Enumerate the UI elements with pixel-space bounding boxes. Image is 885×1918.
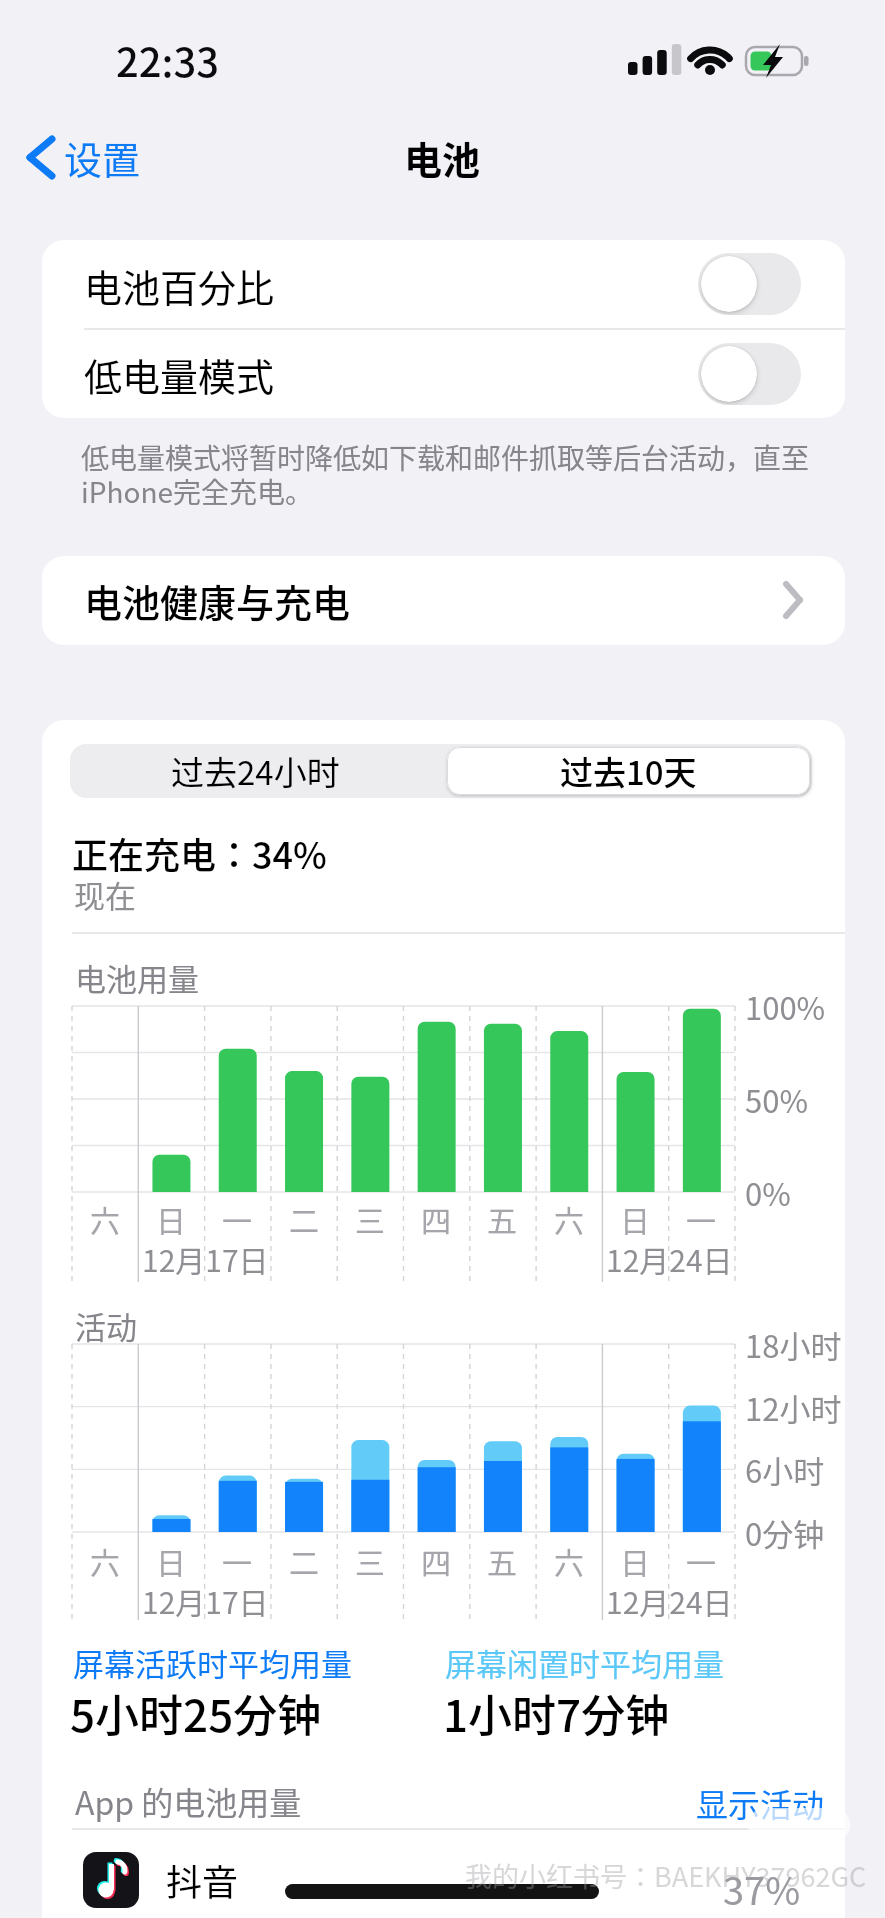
staticText: 六 xyxy=(90,1539,120,1582)
staticText: 五 xyxy=(487,1197,517,1240)
staticText: 18小时 xyxy=(745,1322,842,1367)
staticText: 低电量模式 xyxy=(84,347,275,402)
button[interactable] xyxy=(20,130,150,186)
staticText: 三 xyxy=(355,1539,385,1582)
staticText: 12月17日 xyxy=(142,1579,269,1622)
staticText: 现在 xyxy=(74,872,136,917)
staticText: 过去24小时 xyxy=(171,747,340,795)
button[interactable] xyxy=(698,343,801,405)
staticText: 屏幕活跃时平均用量 xyxy=(73,1640,352,1685)
staticText: 一 xyxy=(222,1539,252,1582)
staticText: 六 xyxy=(554,1197,584,1240)
staticText: 显示活动 xyxy=(696,1780,825,1826)
button[interactable] xyxy=(42,556,845,645)
staticText: 12小时 xyxy=(745,1385,842,1430)
staticText: 1小时7分钟 xyxy=(443,1681,670,1745)
staticText: 日 xyxy=(156,1539,186,1582)
staticText: 日 xyxy=(156,1197,186,1240)
button[interactable] xyxy=(698,253,801,315)
staticText: 五 xyxy=(487,1539,517,1582)
staticText: 电池 xyxy=(404,130,481,185)
staticText: 日 xyxy=(620,1539,650,1582)
staticText: 二 xyxy=(289,1539,319,1582)
staticText: 六 xyxy=(90,1197,120,1240)
staticText: 12月24日 xyxy=(606,1237,733,1280)
staticText: 四 xyxy=(421,1197,451,1240)
staticText: 50% xyxy=(745,1077,808,1122)
staticText: 活动 xyxy=(75,1303,137,1348)
staticText: 三 xyxy=(355,1197,385,1240)
staticText: 二 xyxy=(289,1197,319,1240)
staticText: 低电量模式将暂时降低如下载和邮件抓取等后台活动，直至 iPhone完全充电。 xyxy=(81,437,810,511)
button[interactable] xyxy=(447,747,810,795)
staticText: 电池百分比 xyxy=(84,258,275,313)
staticText: 22:33 xyxy=(116,31,220,89)
staticText: 5小时25分钟 xyxy=(70,1681,322,1745)
staticText: 抖音 xyxy=(166,1854,239,1906)
staticText: 屏幕闲置时平均用量 xyxy=(445,1640,724,1685)
staticText: 一 xyxy=(222,1197,252,1240)
staticText: 一 xyxy=(686,1197,716,1240)
staticText: 12月24日 xyxy=(606,1579,733,1622)
staticText: 我的小红书号：BAEKHY37962GC xyxy=(465,1856,867,1895)
button[interactable]: 显示活动 xyxy=(690,1775,830,1831)
staticText: 过去10天 xyxy=(560,747,697,795)
staticText: 100% xyxy=(745,984,826,1029)
staticText: 0% xyxy=(745,1170,791,1215)
staticText: 正在充电：34% xyxy=(72,827,327,879)
staticText: 12月17日 xyxy=(142,1237,269,1280)
staticText: 设置 xyxy=(64,130,141,185)
staticText: 6小时 xyxy=(745,1447,825,1492)
staticText: 0分钟 xyxy=(745,1510,825,1555)
staticText: 四 xyxy=(421,1539,451,1582)
staticText: 电池健康与充电 xyxy=(84,573,351,628)
staticText: 六 xyxy=(554,1539,584,1582)
button[interactable] xyxy=(42,1836,845,1918)
button[interactable] xyxy=(70,744,441,798)
staticText: 一 xyxy=(686,1539,716,1582)
staticText: 37% xyxy=(723,1861,801,1916)
staticText: 日 xyxy=(620,1197,650,1240)
staticText: 电池用量 xyxy=(75,955,199,1000)
staticText: App 的电池用量 xyxy=(75,1778,302,1824)
